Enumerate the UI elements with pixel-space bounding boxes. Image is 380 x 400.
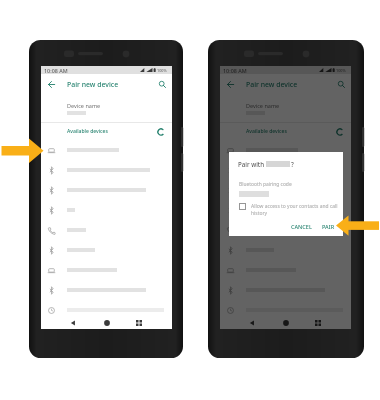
button[interactable] — [220, 160, 351, 180]
staticText: Device name — [67, 102, 101, 109]
button[interactable] — [41, 160, 172, 180]
staticText: Pair new device — [246, 80, 298, 89]
staticText: Available devices — [67, 128, 108, 135]
button[interactable] — [41, 140, 172, 160]
button[interactable] — [41, 200, 172, 220]
button[interactable]: Recent apps — [312, 317, 324, 329]
button[interactable]: Back — [220, 74, 240, 94]
button[interactable]: Back — [246, 317, 258, 329]
staticText: 100% — [157, 68, 167, 73]
staticText: Pair new device — [67, 80, 119, 89]
button[interactable] — [41, 260, 172, 280]
button[interactable] — [41, 280, 172, 300]
staticText: CANCEL — [291, 223, 312, 230]
button[interactable] — [220, 280, 351, 300]
button[interactable]: PAIR — [320, 221, 337, 232]
button[interactable] — [220, 240, 351, 260]
button[interactable]: Search — [332, 74, 351, 94]
staticText: ? — [291, 160, 294, 168]
button[interactable] — [220, 140, 351, 160]
staticText: Pair with — [238, 160, 265, 168]
button[interactable]: Allow access to your contacts and call h… — [239, 203, 246, 210]
button[interactable]: CANCEL — [289, 221, 314, 232]
button[interactable] — [220, 300, 351, 320]
button[interactable] — [220, 200, 351, 220]
button[interactable]: Search — [153, 74, 172, 94]
button[interactable] — [220, 220, 351, 240]
button[interactable]: Home — [101, 317, 113, 329]
button[interactable]: Back — [41, 74, 61, 94]
button[interactable] — [41, 300, 172, 320]
staticText: Allow access to your contacts and call h… — [251, 203, 340, 216]
button[interactable] — [41, 220, 172, 240]
staticText: 100% — [336, 68, 346, 73]
button[interactable]: Recent apps — [133, 317, 145, 329]
staticText: Available devices — [246, 128, 287, 135]
button[interactable]: Back — [67, 317, 79, 329]
button[interactable] — [220, 260, 351, 280]
staticText: Device name — [246, 102, 280, 109]
staticText: 10:08 AM — [223, 67, 247, 74]
staticText: 10:08 AM — [44, 67, 68, 74]
button[interactable] — [220, 180, 351, 200]
button[interactable] — [41, 240, 172, 260]
button[interactable]: Refresh — [155, 126, 166, 137]
button[interactable]: Refresh — [334, 126, 345, 137]
button[interactable]: Home — [280, 317, 292, 329]
button[interactable] — [41, 180, 172, 200]
staticText: Bluetooth pairing code — [239, 181, 292, 188]
staticText: PAIR — [322, 223, 335, 230]
